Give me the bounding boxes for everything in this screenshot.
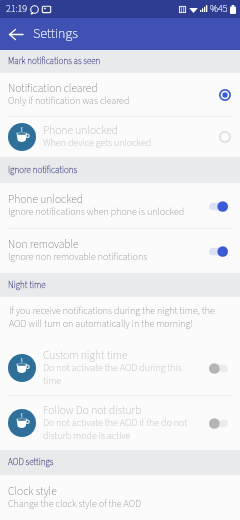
- staticText: Follow Do not disturb: [43, 402, 142, 418]
- staticText: Clock style: [8, 483, 57, 499]
- staticText: Phone unlocked: [43, 122, 118, 138]
- staticText: Phone unlocked: [8, 191, 83, 207]
- button[interactable]: Toggle: [207, 240, 236, 262]
- button[interactable]: Toggle: [207, 412, 236, 434]
- staticText: Change the clock style of the AOD: [8, 497, 142, 511]
- button[interactable]: Back: [0, 18, 32, 50]
- staticText: Ignore notifications when phone is unloc…: [8, 205, 185, 219]
- button[interactable]: Select option: [214, 126, 236, 148]
- button[interactable]: Phone unlocked: [0, 117, 240, 157]
- button[interactable]: Select option: [214, 84, 236, 106]
- staticText: Notification cleared: [8, 80, 98, 96]
- staticText: Night time: [8, 279, 46, 292]
- staticText: Non removable: [8, 236, 79, 252]
- button[interactable]: Non removable: [0, 229, 240, 273]
- staticText: Ignore non removable notifications: [8, 250, 148, 264]
- staticText: Ignore notifications: [8, 164, 78, 177]
- staticText: Do not activate the AOD during this time: [43, 361, 191, 388]
- button[interactable]: Notification cleared: [0, 73, 240, 116]
- button[interactable]: Clock style: [0, 475, 240, 520]
- staticText: AOD settings: [8, 456, 54, 469]
- button[interactable]: Toggle: [207, 357, 236, 379]
- staticText: Only if notification was cleared: [8, 94, 130, 108]
- staticText: Do not activate the AOD if the do not di…: [43, 416, 191, 443]
- staticText: If you receive notifications during the …: [9, 304, 230, 331]
- staticText: Mark notifications as seen: [8, 55, 101, 68]
- staticText: %45: [210, 2, 228, 16]
- staticText: 21:19: [6, 2, 27, 16]
- button[interactable]: Phone unlocked: [0, 183, 240, 228]
- button[interactable]: Toggle: [207, 195, 236, 217]
- staticText: When device gets unlocked: [43, 136, 152, 150]
- staticText: Settings: [33, 24, 78, 44]
- button[interactable]: Custom night time: [0, 341, 240, 395]
- button[interactable]: Follow Do not disturb: [0, 396, 240, 450]
- staticText: Custom night time: [43, 347, 128, 363]
